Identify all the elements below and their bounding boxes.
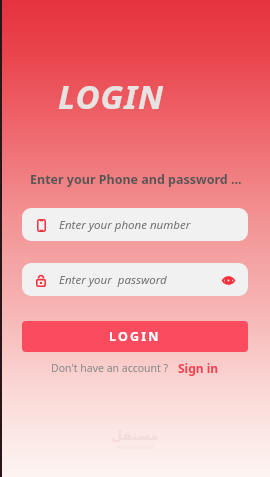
staticText: LOGIN (58, 74, 164, 119)
staticText: LOGIN (109, 328, 161, 345)
button[interactable]: LOGIN (22, 321, 248, 352)
staticText: Enter your Phone and password ... (30, 171, 242, 188)
button[interactable]: Show password (220, 272, 236, 288)
staticText: Enter your password (59, 272, 167, 288)
staticText: Enter your phone number (59, 217, 191, 233)
button[interactable]: Sign in (178, 360, 219, 376)
staticText: Sign in (178, 360, 219, 376)
staticText: Don't have an account ? (51, 361, 169, 375)
button[interactable]: Enter your password (22, 263, 248, 296)
button[interactable]: Enter your phone number (22, 208, 248, 241)
staticText: مستقل (111, 428, 159, 443)
